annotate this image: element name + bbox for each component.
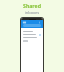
staticText: Shared	[0, 2, 64, 9]
button[interactable]: More options	[38, 21, 41, 24]
button[interactable]: Expand	[23, 33, 41, 36]
staticText: inboxes	[0, 10, 64, 15]
button[interactable]: Action chip	[23, 40, 28, 42]
button[interactable]: Search mail	[23, 24, 41, 27]
button[interactable]	[23, 30, 41, 33]
button[interactable]	[23, 36, 41, 39]
button[interactable]: Open navigation menu	[23, 21, 26, 24]
